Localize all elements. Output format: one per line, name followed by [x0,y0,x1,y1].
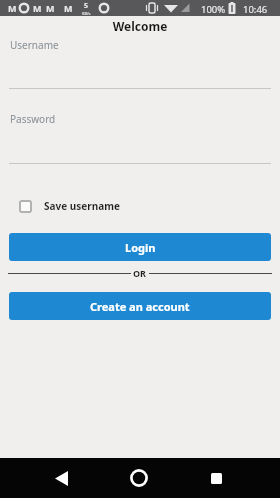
staticText: M [33,2,42,14]
staticText: 100% [201,3,226,16]
staticText: KB/s [82,11,91,16]
button[interactable] [119,458,159,498]
button[interactable] [41,458,81,498]
button[interactable]: Login [9,233,271,261]
staticText: M [46,2,55,14]
staticText: Username [10,38,59,52]
staticText: M [64,2,73,14]
staticText: 10:46 [243,3,268,16]
button[interactable]: Username [9,36,271,89]
button[interactable]: Create an account [9,292,271,320]
button[interactable] [196,458,236,498]
staticText: 5 [84,1,89,11]
staticText: Welcome [0,18,280,34]
staticText: M [8,2,17,14]
staticText: Login [125,240,156,255]
button[interactable]: Save username [19,199,120,213]
staticText: OR [133,267,147,279]
staticText: Create an account [90,299,190,314]
staticText: Password [10,112,56,126]
staticText: Save username [44,199,120,213]
button[interactable]: Password [9,110,271,164]
